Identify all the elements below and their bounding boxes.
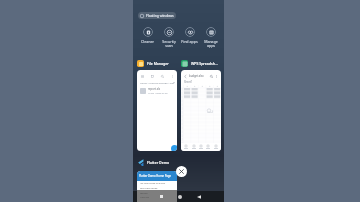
staticText: Adjust size [140, 196, 149, 198]
button[interactable]: Recents [156, 191, 167, 202]
button[interactable]: WPS Spreadsh... [181, 60, 218, 67]
button[interactable]: Find apps [180, 27, 199, 44]
staticText: budget.xlsx [189, 74, 204, 78]
button[interactable]: Sheet tool [199, 145, 203, 149]
button[interactable]: Flutter Demo [137, 159, 170, 166]
staticText: You have pushed the button [140, 182, 166, 185]
staticText: Flutter Demo [147, 160, 170, 165]
button[interactable]: Sheet tool [192, 145, 196, 149]
staticText: File Manager [147, 61, 169, 66]
button[interactable]: Toolbar action [170, 74, 174, 78]
button[interactable]: Sheet tool [214, 145, 218, 149]
button[interactable]: Toolbar action [140, 74, 144, 78]
button[interactable]: Back [193, 191, 204, 202]
staticText: Text size [140, 192, 148, 195]
button[interactable]: File Manager [137, 60, 169, 67]
staticText: report.xls [148, 87, 161, 91]
button[interactable]: Flutter Demo Home Page [137, 171, 177, 202]
staticText: Security scan [162, 39, 176, 49]
button[interactable]: budget.xlsx [181, 70, 221, 151]
button[interactable]: Home [174, 191, 185, 202]
staticText: Flutter Demo Home Page [139, 174, 171, 178]
staticText: Cleaner [141, 39, 154, 44]
staticText: WPS Spreadsh... [191, 61, 218, 66]
staticText: 12 KB | 2024-01-02 [148, 92, 168, 95]
staticText: Floating windows [146, 13, 174, 18]
button[interactable]: Sheet tool [206, 145, 210, 149]
button[interactable]: Toolbar action [160, 74, 164, 78]
staticText: Sheet1 [184, 80, 193, 84]
staticText: Home > Internal storage > Download [140, 81, 174, 84]
button[interactable]: Sheet tool [184, 145, 188, 149]
staticText: Find apps [181, 39, 198, 44]
staticText: this many times: [140, 187, 158, 190]
button[interactable]: Manage apps [201, 27, 220, 49]
button[interactable]: Cleaner [138, 27, 157, 44]
button[interactable]: Toolbar action [150, 74, 154, 78]
button[interactable]: Floating windows [138, 12, 176, 19]
button[interactable]: Security scan [159, 27, 178, 49]
button[interactable]: Toolbar action [137, 70, 177, 151]
staticText: Manage apps [204, 39, 218, 49]
button[interactable]: Close all [176, 166, 187, 177]
button[interactable]: Add [171, 145, 177, 151]
